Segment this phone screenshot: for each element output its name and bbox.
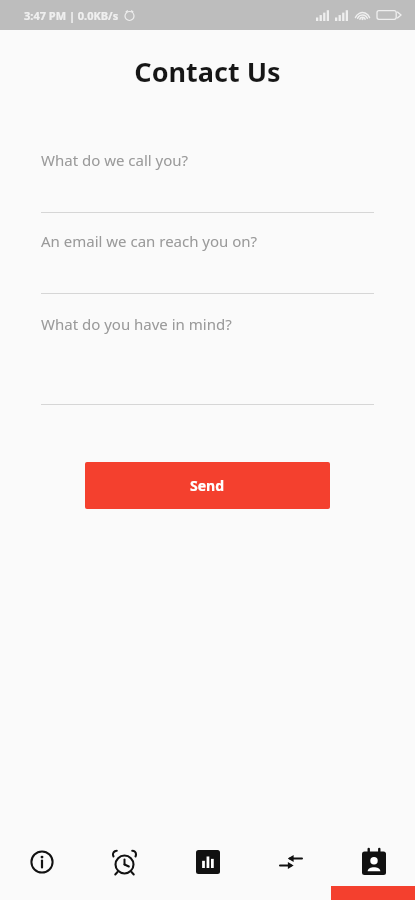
staticText: An email we can reach you on? xyxy=(41,231,258,251)
button[interactable]: What do we call you? xyxy=(41,150,374,213)
staticText: What do we call you? xyxy=(41,150,189,170)
staticText: Send xyxy=(190,476,225,495)
button[interactable]: Transfer xyxy=(249,840,332,884)
button[interactable]: What do you have in mind? xyxy=(41,314,374,405)
button[interactable]: Contact xyxy=(332,840,415,884)
staticText: 3:47 PM | 0.0KB/s xyxy=(24,8,119,23)
button[interactable]: An email we can reach you on? xyxy=(41,231,374,294)
button[interactable]: Alarms xyxy=(83,840,166,884)
button[interactable]: Send xyxy=(85,462,330,509)
button[interactable]: Statistics xyxy=(166,840,249,884)
button[interactable]: Info xyxy=(0,840,83,884)
staticText: Contact Us xyxy=(134,53,281,90)
staticText: What do you have in mind? xyxy=(41,314,232,334)
